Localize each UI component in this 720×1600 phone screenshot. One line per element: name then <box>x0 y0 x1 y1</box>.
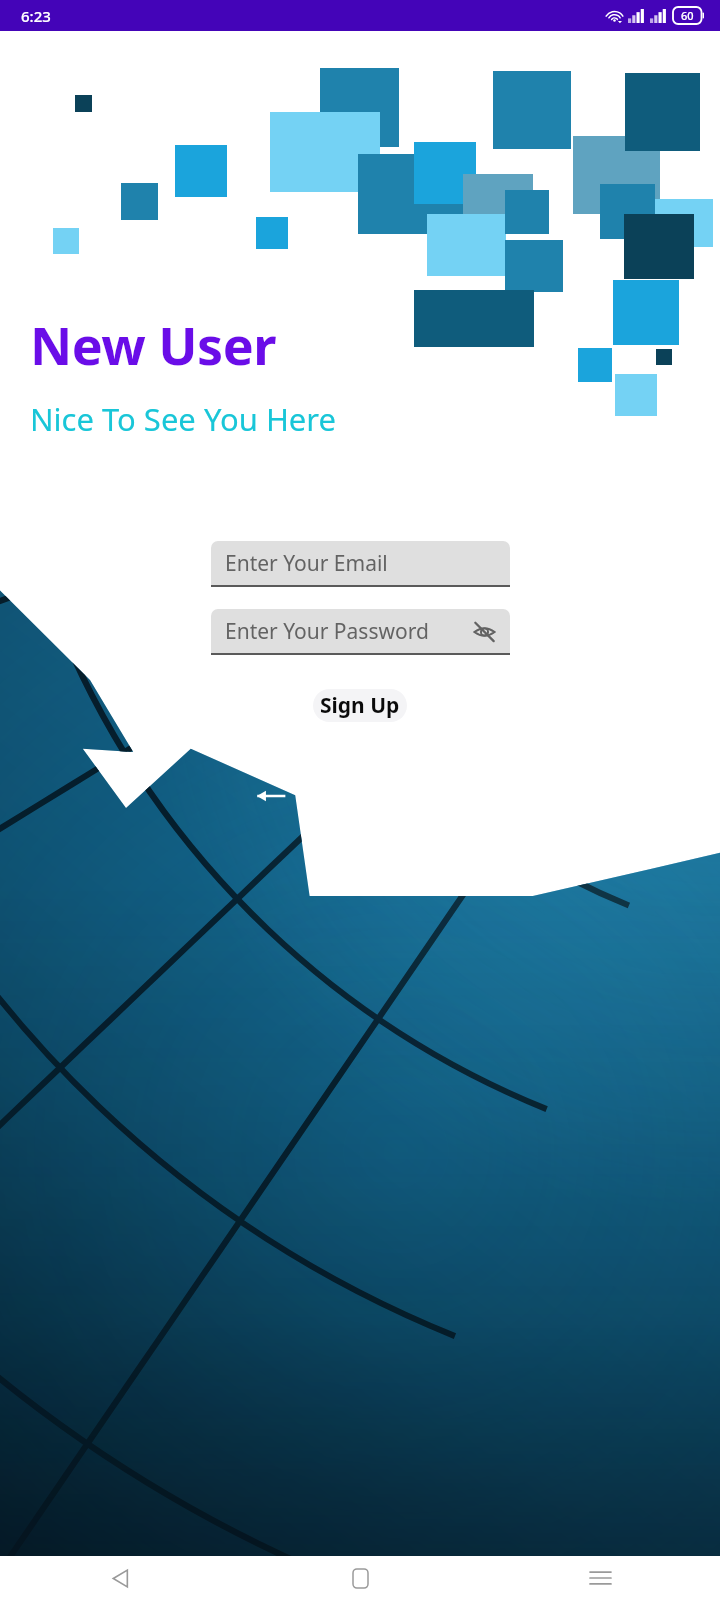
button[interactable]: Want to log in <box>247 773 473 818</box>
button[interactable]: Recent apps <box>480 1556 720 1600</box>
staticText: Enter Your Email <box>225 549 388 578</box>
staticText: New User <box>30 309 277 380</box>
button[interactable]: Sign Up <box>313 689 407 722</box>
button[interactable]: Back <box>0 1556 240 1600</box>
button[interactable]: Home <box>240 1556 480 1600</box>
staticText: Want to log in <box>295 779 463 812</box>
staticText: 60 <box>681 8 694 23</box>
staticText: Nice To See You Here <box>30 398 337 440</box>
button[interactable]: Enter Your Password <box>211 609 510 655</box>
button[interactable]: Enter Your Email <box>211 541 510 587</box>
staticText: Enter Your Password <box>225 617 429 646</box>
staticText: Sign Up <box>320 691 400 720</box>
button[interactable]: Toggle password visibility <box>470 617 498 645</box>
staticText: 6:23 <box>21 6 51 26</box>
